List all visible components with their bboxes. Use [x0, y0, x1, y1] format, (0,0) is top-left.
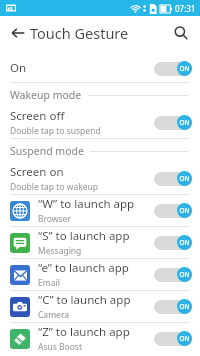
staticText: Messaging: [38, 245, 82, 257]
staticText: Suspend mode: [10, 144, 84, 158]
button[interactable]: “S” to launch app: [0, 227, 200, 258]
staticText: ON: [179, 174, 190, 183]
staticText: Camera: [38, 309, 69, 321]
button[interactable]: Toggle on: [154, 171, 192, 186]
button[interactable]: Toggle on: [154, 115, 192, 130]
staticText: Asus Boost: [38, 341, 82, 353]
staticText: “Z” to launch app: [38, 324, 130, 340]
button[interactable]: Back: [5, 20, 31, 46]
staticText: Wakeup mode: [10, 88, 82, 102]
button[interactable]: On: [0, 54, 200, 82]
staticText: ON: [179, 64, 190, 73]
button[interactable]: Search: [168, 20, 194, 46]
staticText: Touch Gesture: [30, 23, 129, 43]
staticText: “S” to launch app: [38, 228, 130, 244]
button[interactable]: Toggle on: [154, 299, 192, 314]
staticText: On: [10, 60, 27, 76]
staticText: ON: [179, 270, 190, 279]
staticText: “C” to launch app: [38, 292, 131, 308]
staticText: Double tap to wakeup: [10, 181, 98, 193]
staticText: “W” to launch app: [38, 196, 135, 212]
button[interactable]: Toggle on: [154, 267, 192, 282]
button[interactable]: “W” to launch app: [0, 195, 200, 226]
staticText: 07:31: [175, 3, 196, 14]
staticText: ON: [179, 206, 190, 215]
button[interactable]: Screen on: [0, 163, 200, 194]
staticText: ON: [179, 118, 190, 127]
button[interactable]: Toggle on: [154, 61, 192, 76]
button[interactable]: Toggle on: [154, 203, 192, 218]
button[interactable]: Toggle on: [154, 235, 192, 250]
button[interactable]: Screen off: [0, 107, 200, 138]
staticText: Browser: [38, 213, 71, 225]
staticText: ON: [179, 334, 190, 343]
staticText: Screen on: [10, 164, 64, 180]
staticText: Double tap to suspend: [10, 125, 101, 137]
button[interactable]: Toggle on: [154, 331, 192, 346]
button[interactable]: “e” to launch app: [0, 259, 200, 290]
staticText: ON: [179, 238, 190, 247]
staticText: Screen off: [10, 108, 65, 124]
staticText: ON: [179, 302, 190, 311]
button[interactable]: “Z” to launch app: [0, 323, 200, 354]
staticText: Email: [38, 277, 60, 289]
staticText: “e” to launch app: [38, 260, 129, 276]
button[interactable]: “C” to launch app: [0, 291, 200, 322]
